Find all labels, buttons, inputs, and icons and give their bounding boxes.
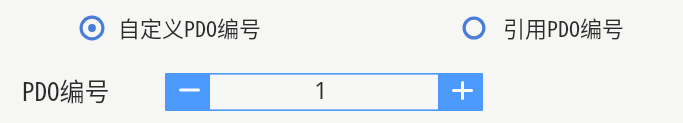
button[interactable]: Increase PDO number: [438, 73, 483, 111]
button[interactable]: 自定义PDO编号: [74, 10, 274, 44]
staticText: 自定义PDO编号: [118, 11, 262, 43]
staticText: 1: [314, 73, 328, 106]
staticText: 引用PDO编号: [503, 11, 625, 43]
button[interactable]: Decrease PDO number: [165, 73, 210, 111]
staticText: PDO编号: [22, 72, 110, 108]
button[interactable]: 引用PDO编号: [457, 10, 637, 44]
